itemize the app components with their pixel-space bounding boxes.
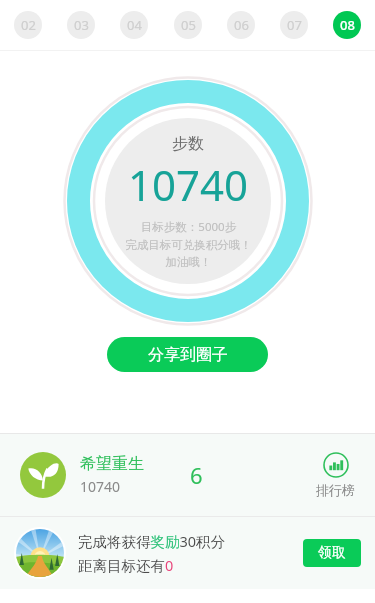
staticText: 05 [181,16,196,34]
staticText: 02 [21,16,36,34]
staticText: 分享到圈子 [148,345,228,365]
staticText: 排行榜 [316,482,355,498]
staticText: 08 [340,16,355,34]
button[interactable]: 06 [227,11,255,39]
staticText: 03 [74,16,89,34]
button[interactable]: 04 [120,11,148,39]
button[interactable]: 08 [333,11,361,39]
staticText: 06 [234,16,249,34]
staticText: 目标步数：5000步 完成目标可兑换积分哦！ 加油哦！ [125,219,252,269]
button[interactable]: 02 [14,11,42,39]
staticText: 07 [287,16,302,34]
button[interactable]: 希望重生 [0,434,375,516]
button[interactable]: 领取 [303,539,361,567]
button[interactable]: 07 [280,11,308,39]
staticText: 6 [190,460,203,490]
button[interactable]: 05 [174,11,202,39]
staticText: 距离目标还有0 [78,555,174,575]
button[interactable]: 完成将获得奖励30积分 [0,517,375,589]
button[interactable]: 分享到圈子 [107,337,268,372]
staticText: 希望重生 [80,454,144,474]
button[interactable]: 03 [67,11,95,39]
button[interactable]: 排行榜 [316,452,355,498]
staticText: 10740 [80,477,121,496]
staticText: 步数 [172,134,204,154]
staticText: 10740 [128,156,249,213]
staticText: 04 [127,16,142,34]
staticText: 领取 [318,544,346,562]
staticText: 完成将获得奖励30积分 [78,531,226,551]
